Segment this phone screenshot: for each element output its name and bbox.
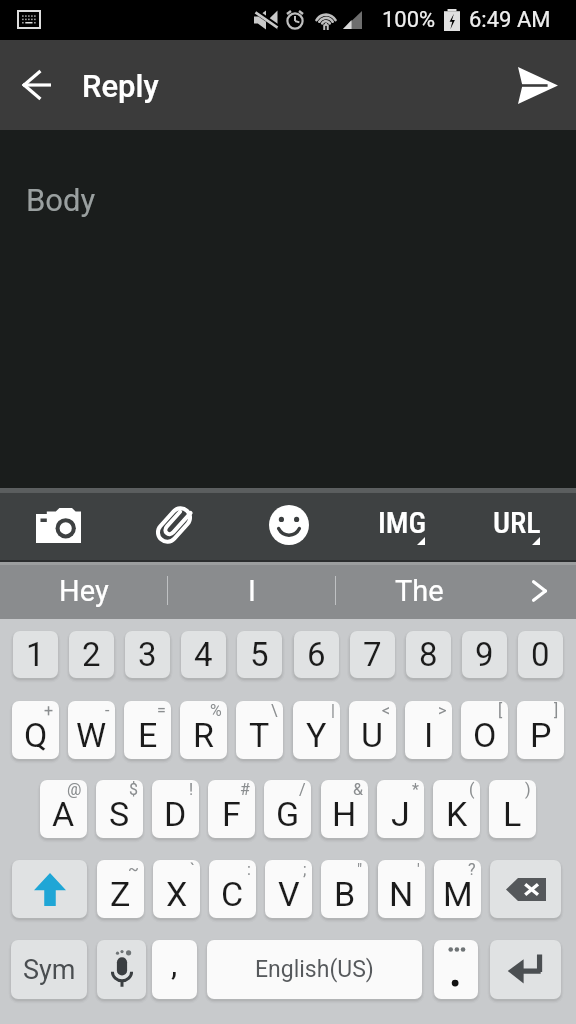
staticText: 6 bbox=[307, 635, 326, 674]
button[interactable]: Emoji bbox=[231, 488, 346, 562]
button[interactable]: U bbox=[349, 701, 396, 759]
button[interactable]: 7 bbox=[350, 631, 395, 678]
button[interactable]: Hey bbox=[0, 562, 168, 619]
staticText: B bbox=[334, 874, 356, 914]
button[interactable]: Voice input bbox=[97, 940, 146, 999]
button[interactable]: P bbox=[517, 701, 564, 759]
staticText: # bbox=[240, 780, 250, 799]
button[interactable]: C bbox=[209, 860, 256, 918]
button[interactable]: Shift bbox=[12, 860, 87, 918]
button[interactable]: Z bbox=[97, 860, 144, 918]
button[interactable]: W bbox=[68, 701, 115, 759]
staticText: W bbox=[76, 715, 107, 755]
button[interactable]: Body bbox=[0, 130, 576, 488]
staticText: R bbox=[193, 715, 214, 755]
staticText: M bbox=[443, 874, 473, 914]
button[interactable]: Back bbox=[0, 40, 74, 130]
button[interactable]: Send bbox=[500, 40, 576, 130]
button[interactable]: Camera bbox=[0, 488, 116, 562]
staticText: < bbox=[382, 701, 391, 720]
button[interactable]: Period bbox=[434, 940, 478, 999]
button[interactable]: Insert image bbox=[346, 488, 461, 562]
button[interactable]: English(US) bbox=[207, 940, 422, 999]
staticText: I bbox=[248, 574, 256, 608]
staticText: - bbox=[105, 701, 110, 720]
button[interactable]: 8 bbox=[406, 631, 451, 678]
staticText: 5 bbox=[250, 635, 269, 674]
button[interactable]: 5 bbox=[237, 631, 282, 678]
staticText: E bbox=[138, 715, 158, 755]
button[interactable]: E bbox=[124, 701, 171, 759]
staticText: 8 bbox=[419, 635, 438, 674]
button[interactable]: The bbox=[335, 562, 503, 619]
staticText: [ bbox=[498, 701, 503, 720]
button[interactable]: More suggestions bbox=[503, 562, 576, 619]
button[interactable]: J bbox=[377, 780, 424, 838]
button[interactable]: Insert URL bbox=[461, 488, 576, 562]
staticText: Hey bbox=[59, 574, 109, 608]
staticText: ~ bbox=[128, 860, 139, 879]
staticText: ] bbox=[554, 701, 559, 720]
button[interactable]: S bbox=[96, 780, 143, 838]
staticText: ' bbox=[417, 860, 420, 879]
button[interactable]: K bbox=[433, 780, 480, 838]
staticText: Sym bbox=[23, 954, 76, 986]
staticText: T bbox=[249, 715, 270, 755]
staticText: H bbox=[332, 794, 357, 834]
button[interactable]: 4 bbox=[181, 631, 226, 678]
staticText: ? bbox=[468, 860, 476, 879]
button[interactable]: I bbox=[405, 701, 452, 759]
button[interactable]: V bbox=[265, 860, 312, 918]
button[interactable]: F bbox=[208, 780, 255, 838]
button[interactable]: I bbox=[168, 562, 336, 619]
staticText: F bbox=[222, 794, 241, 834]
button[interactable]: R bbox=[180, 701, 227, 759]
button[interactable]: Y bbox=[293, 701, 340, 759]
staticText: 0 bbox=[531, 635, 550, 674]
button[interactable]: 2 bbox=[69, 631, 114, 678]
staticText: 7 bbox=[363, 635, 382, 674]
button[interactable]: Q bbox=[12, 701, 59, 759]
staticText: \ bbox=[271, 701, 278, 720]
button[interactable]: X bbox=[153, 860, 200, 918]
button[interactable]: Sym bbox=[11, 940, 87, 999]
button[interactable]: M bbox=[434, 860, 481, 918]
button[interactable]: T bbox=[236, 701, 283, 759]
staticText: 100% bbox=[382, 7, 436, 33]
staticText: Reply bbox=[82, 68, 159, 104]
button[interactable]: Backspace bbox=[490, 860, 561, 918]
button[interactable]: Attach file bbox=[116, 488, 231, 562]
button[interactable]: 0 bbox=[518, 631, 563, 678]
button[interactable]: G bbox=[264, 780, 311, 838]
staticText: Body bbox=[26, 182, 96, 218]
button[interactable]: D bbox=[152, 780, 199, 838]
staticText: @ bbox=[67, 780, 82, 799]
staticText: " bbox=[357, 860, 363, 879]
button[interactable]: 9 bbox=[462, 631, 507, 678]
button[interactable]: Enter bbox=[490, 940, 561, 999]
button[interactable]: L bbox=[489, 780, 536, 838]
staticText: L bbox=[503, 794, 522, 834]
staticText: U bbox=[361, 715, 384, 755]
button[interactable]: 3 bbox=[125, 631, 170, 678]
staticText: & bbox=[353, 780, 363, 799]
staticText: N bbox=[389, 874, 414, 914]
staticText: J bbox=[391, 794, 410, 834]
button[interactable]: 1 bbox=[13, 631, 58, 678]
staticText: 2 bbox=[82, 635, 101, 674]
button[interactable]: A bbox=[40, 780, 87, 838]
button[interactable]: N bbox=[378, 860, 425, 918]
button[interactable]: H bbox=[321, 780, 368, 838]
staticText: K bbox=[446, 794, 468, 834]
staticText: = bbox=[157, 701, 166, 720]
staticText: ( bbox=[469, 780, 475, 799]
staticText: | bbox=[331, 701, 335, 720]
staticText: ; bbox=[303, 860, 307, 879]
staticText: % bbox=[210, 701, 222, 720]
button[interactable]: B bbox=[321, 860, 368, 918]
button[interactable]: 6 bbox=[294, 631, 339, 678]
staticText: V bbox=[278, 874, 300, 914]
button[interactable]: , bbox=[152, 940, 197, 999]
staticText: / bbox=[299, 780, 306, 799]
button[interactable]: O bbox=[461, 701, 508, 759]
